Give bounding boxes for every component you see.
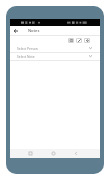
staticText: Notes bbox=[28, 28, 40, 33]
button[interactable]: Select Note bbox=[10, 52, 100, 60]
button[interactable]: Back bbox=[70, 149, 82, 158]
button[interactable]: Recents bbox=[24, 149, 36, 158]
staticText: Select Note bbox=[17, 54, 35, 58]
button[interactable]: Home bbox=[47, 149, 59, 158]
staticText: Select Person bbox=[17, 46, 38, 50]
button[interactable]: Draw bbox=[76, 38, 82, 43]
button[interactable]: Record audio bbox=[84, 38, 90, 43]
button[interactable]: Add photo bbox=[68, 38, 74, 43]
button[interactable]: Back bbox=[10, 26, 21, 35]
button[interactable]: Select Person bbox=[10, 44, 100, 52]
